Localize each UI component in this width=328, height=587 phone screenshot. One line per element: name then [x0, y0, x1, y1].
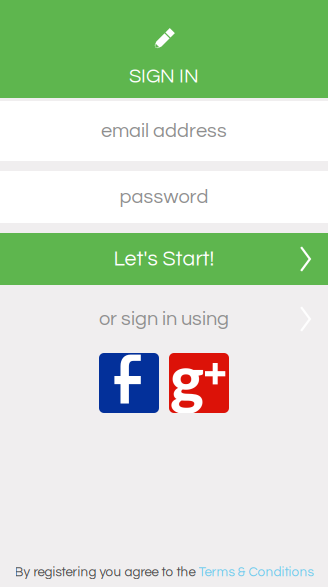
staticText: or sign in using	[99, 309, 229, 329]
button[interactable]: Sign in with Google	[169, 353, 229, 413]
button[interactable]: Let's Start!	[0, 233, 328, 285]
staticText: SIGN IN	[129, 66, 199, 87]
button[interactable]: Terms & Conditions	[198, 565, 313, 579]
button[interactable]: Sign in with Facebook	[99, 353, 159, 413]
staticText: Let's Start!	[113, 248, 214, 270]
staticText: password	[119, 187, 208, 207]
staticText: g	[170, 339, 204, 415]
staticText: By registering you agree to the	[14, 565, 198, 579]
staticText: Terms & Conditions	[198, 565, 313, 579]
staticText: email address	[101, 121, 227, 141]
